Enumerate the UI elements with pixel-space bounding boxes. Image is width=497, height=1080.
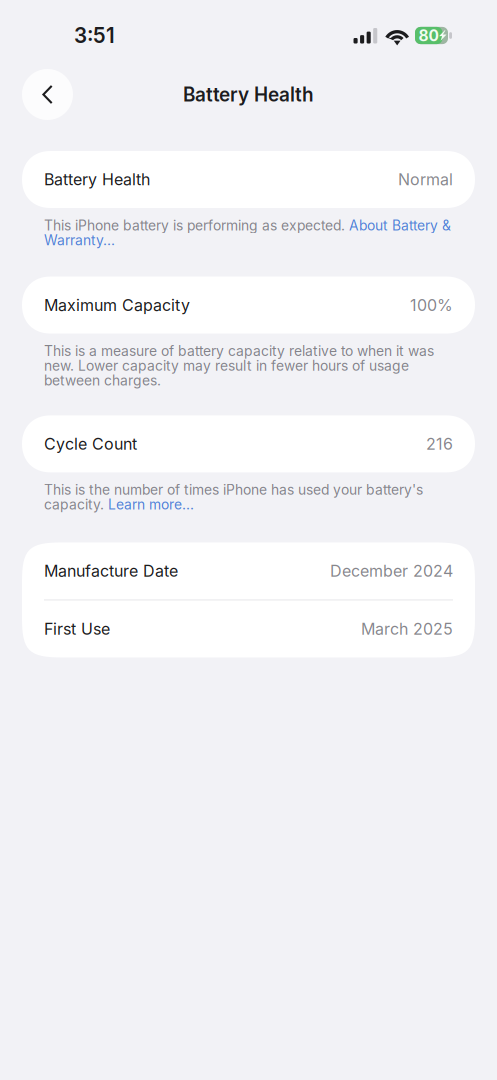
staticText: Battery Health — [44, 170, 150, 189]
staticText: 80 — [418, 26, 438, 45]
staticText: 216 — [426, 434, 453, 454]
button[interactable]: Cycle Count — [22, 415, 475, 472]
button[interactable]: First Use — [22, 600, 475, 657]
staticText: Battery Health — [183, 83, 314, 106]
button[interactable]: Battery Health — [22, 151, 475, 208]
staticText: This is a measure of battery capacity re… — [44, 343, 434, 389]
button[interactable]: Maximum Capacity — [22, 277, 475, 334]
staticText: This iPhone battery is performing as exp… — [44, 217, 451, 249]
staticText: 100% — [410, 295, 453, 315]
staticText: Maximum Capacity — [44, 295, 190, 315]
staticText: Manufacture Date — [44, 561, 178, 581]
staticText: Cycle Count — [44, 434, 137, 454]
staticText: First Use — [44, 619, 110, 639]
staticText: Normal — [398, 170, 453, 189]
staticText: December 2024 — [330, 561, 453, 581]
staticText: This is the number of times iPhone has u… — [44, 481, 423, 513]
staticText: 3:51 — [74, 23, 115, 48]
staticText: March 2025 — [361, 619, 453, 639]
button[interactable]: Manufacture Date — [22, 542, 475, 599]
button[interactable]: Back — [22, 69, 73, 120]
